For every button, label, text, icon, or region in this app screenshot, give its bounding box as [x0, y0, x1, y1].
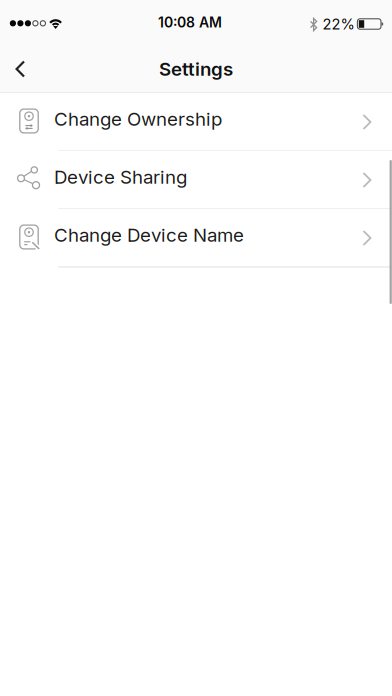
staticText: Device Sharing [54, 166, 187, 188]
staticText: 10:08 AM [158, 14, 222, 31]
staticText: Change Device Name [54, 224, 244, 246]
button[interactable]: Change Ownership [0, 93, 392, 151]
button[interactable]: Device Sharing [0, 151, 392, 209]
button[interactable]: Back [0, 47, 44, 91]
staticText: Change Ownership [54, 108, 222, 130]
button[interactable]: Change Device Name [0, 209, 392, 267]
staticText: 22% [322, 15, 354, 33]
staticText: Settings [159, 58, 233, 80]
